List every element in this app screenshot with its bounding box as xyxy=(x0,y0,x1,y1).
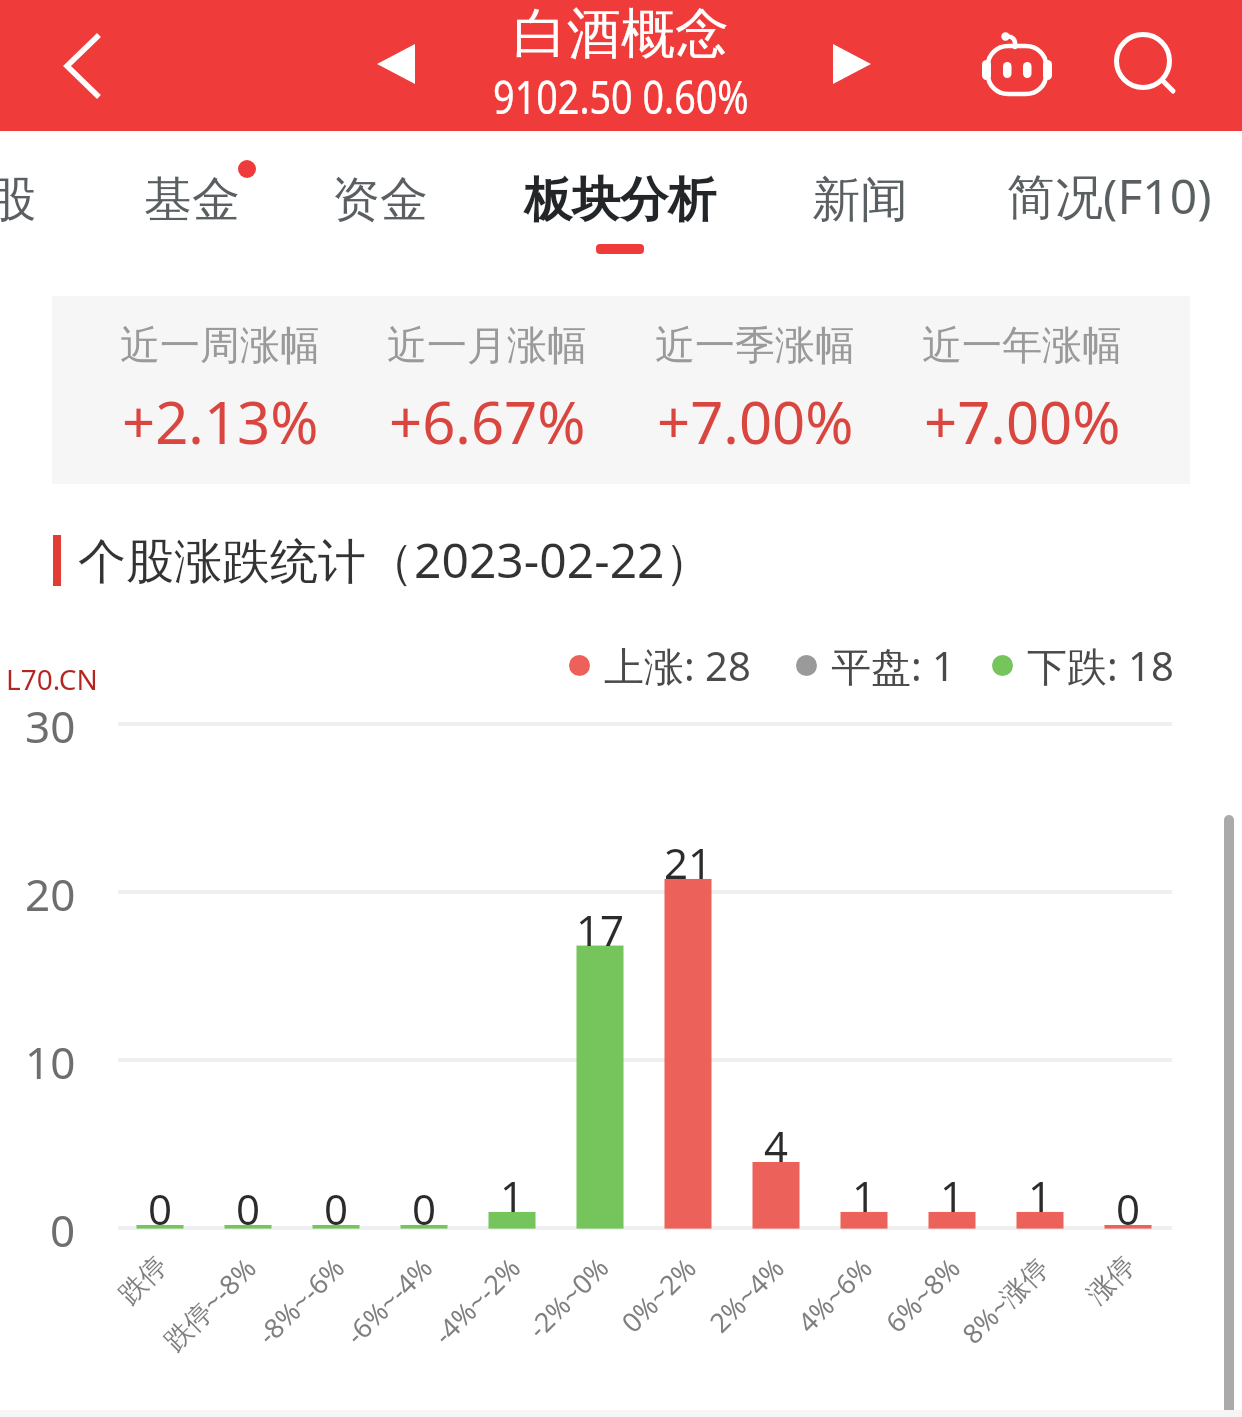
staticText: 6%~8% xyxy=(877,1249,968,1340)
staticText: 新闻 xyxy=(812,170,908,230)
staticText: +7.00% xyxy=(924,382,1121,461)
button[interactable]: Back xyxy=(0,0,164,131)
staticText: 1 xyxy=(852,1167,877,1224)
button[interactable]: 基金 xyxy=(42,131,342,271)
staticText: 近一季涨幅 xyxy=(655,320,855,370)
staticText: 0 xyxy=(1116,1180,1141,1237)
button[interactable]: Previous sector xyxy=(336,0,456,131)
staticText: 1 xyxy=(940,1167,965,1224)
staticText: L70.CN xyxy=(6,660,98,698)
staticText: 8%~涨停 xyxy=(954,1249,1056,1351)
staticText: +6.67% xyxy=(389,382,586,461)
staticText: 基金 xyxy=(144,170,240,230)
staticText: 上涨: 28 xyxy=(604,638,751,693)
staticText: 17 xyxy=(576,901,625,958)
staticText: +7.00% xyxy=(657,382,854,461)
staticText: 股 xyxy=(0,170,36,230)
staticText: 0 xyxy=(50,1200,76,1260)
staticText: 1 xyxy=(500,1167,525,1224)
staticText: 白酒概念 xyxy=(513,0,729,68)
button[interactable]: Search xyxy=(1081,0,1211,129)
staticText: 0 xyxy=(148,1180,173,1237)
staticText: 跌停~-8% xyxy=(155,1249,264,1358)
staticText: 板块分析 xyxy=(524,170,716,230)
staticText: -4%~-2% xyxy=(425,1249,528,1352)
staticText: 下跌: 18 xyxy=(1027,638,1174,693)
button[interactable]: 股 xyxy=(0,131,162,271)
staticText: 1 xyxy=(1028,1167,1053,1224)
staticText: 10 xyxy=(25,1032,76,1092)
staticText: 9102.50 0.60% xyxy=(493,65,749,128)
staticText: 个股涨跌统计（2023-02-22） xyxy=(78,527,713,593)
button[interactable]: AI assistant xyxy=(952,0,1082,128)
button[interactable]: 板块分析 xyxy=(495,131,745,271)
staticText: -2%~0% xyxy=(519,1249,616,1346)
staticText: 近一年涨幅 xyxy=(922,320,1122,370)
staticText: +2.13% xyxy=(122,382,319,461)
staticText: 涨停 xyxy=(1080,1249,1142,1311)
staticText: -6%~-4% xyxy=(337,1249,440,1352)
staticText: 30 xyxy=(25,696,76,756)
staticText: 4 xyxy=(764,1117,789,1174)
staticText: 资金 xyxy=(332,170,428,230)
button[interactable]: 资金 xyxy=(230,131,530,271)
staticText: 近一月涨幅 xyxy=(387,320,587,370)
staticText: 跌停 xyxy=(112,1249,174,1311)
button[interactable]: 新闻 xyxy=(710,131,1010,271)
button[interactable]: Next sector xyxy=(792,0,912,131)
staticText: 4%~6% xyxy=(789,1249,880,1340)
staticText: 近一周涨幅 xyxy=(120,320,320,370)
staticText: 平盘: 1 xyxy=(831,638,955,693)
staticText: 21 xyxy=(664,834,713,891)
staticText: 20 xyxy=(25,864,76,924)
button[interactable]: 简况(F10) xyxy=(959,131,1242,271)
staticText: 0%~2% xyxy=(613,1249,704,1340)
staticText: 0 xyxy=(412,1180,437,1237)
staticText: 0 xyxy=(236,1180,261,1237)
staticText: 简况(F10) xyxy=(1007,163,1212,229)
staticText: 2%~4% xyxy=(701,1249,792,1340)
staticText: 0 xyxy=(324,1180,349,1237)
staticText: -8%~-6% xyxy=(249,1249,352,1352)
